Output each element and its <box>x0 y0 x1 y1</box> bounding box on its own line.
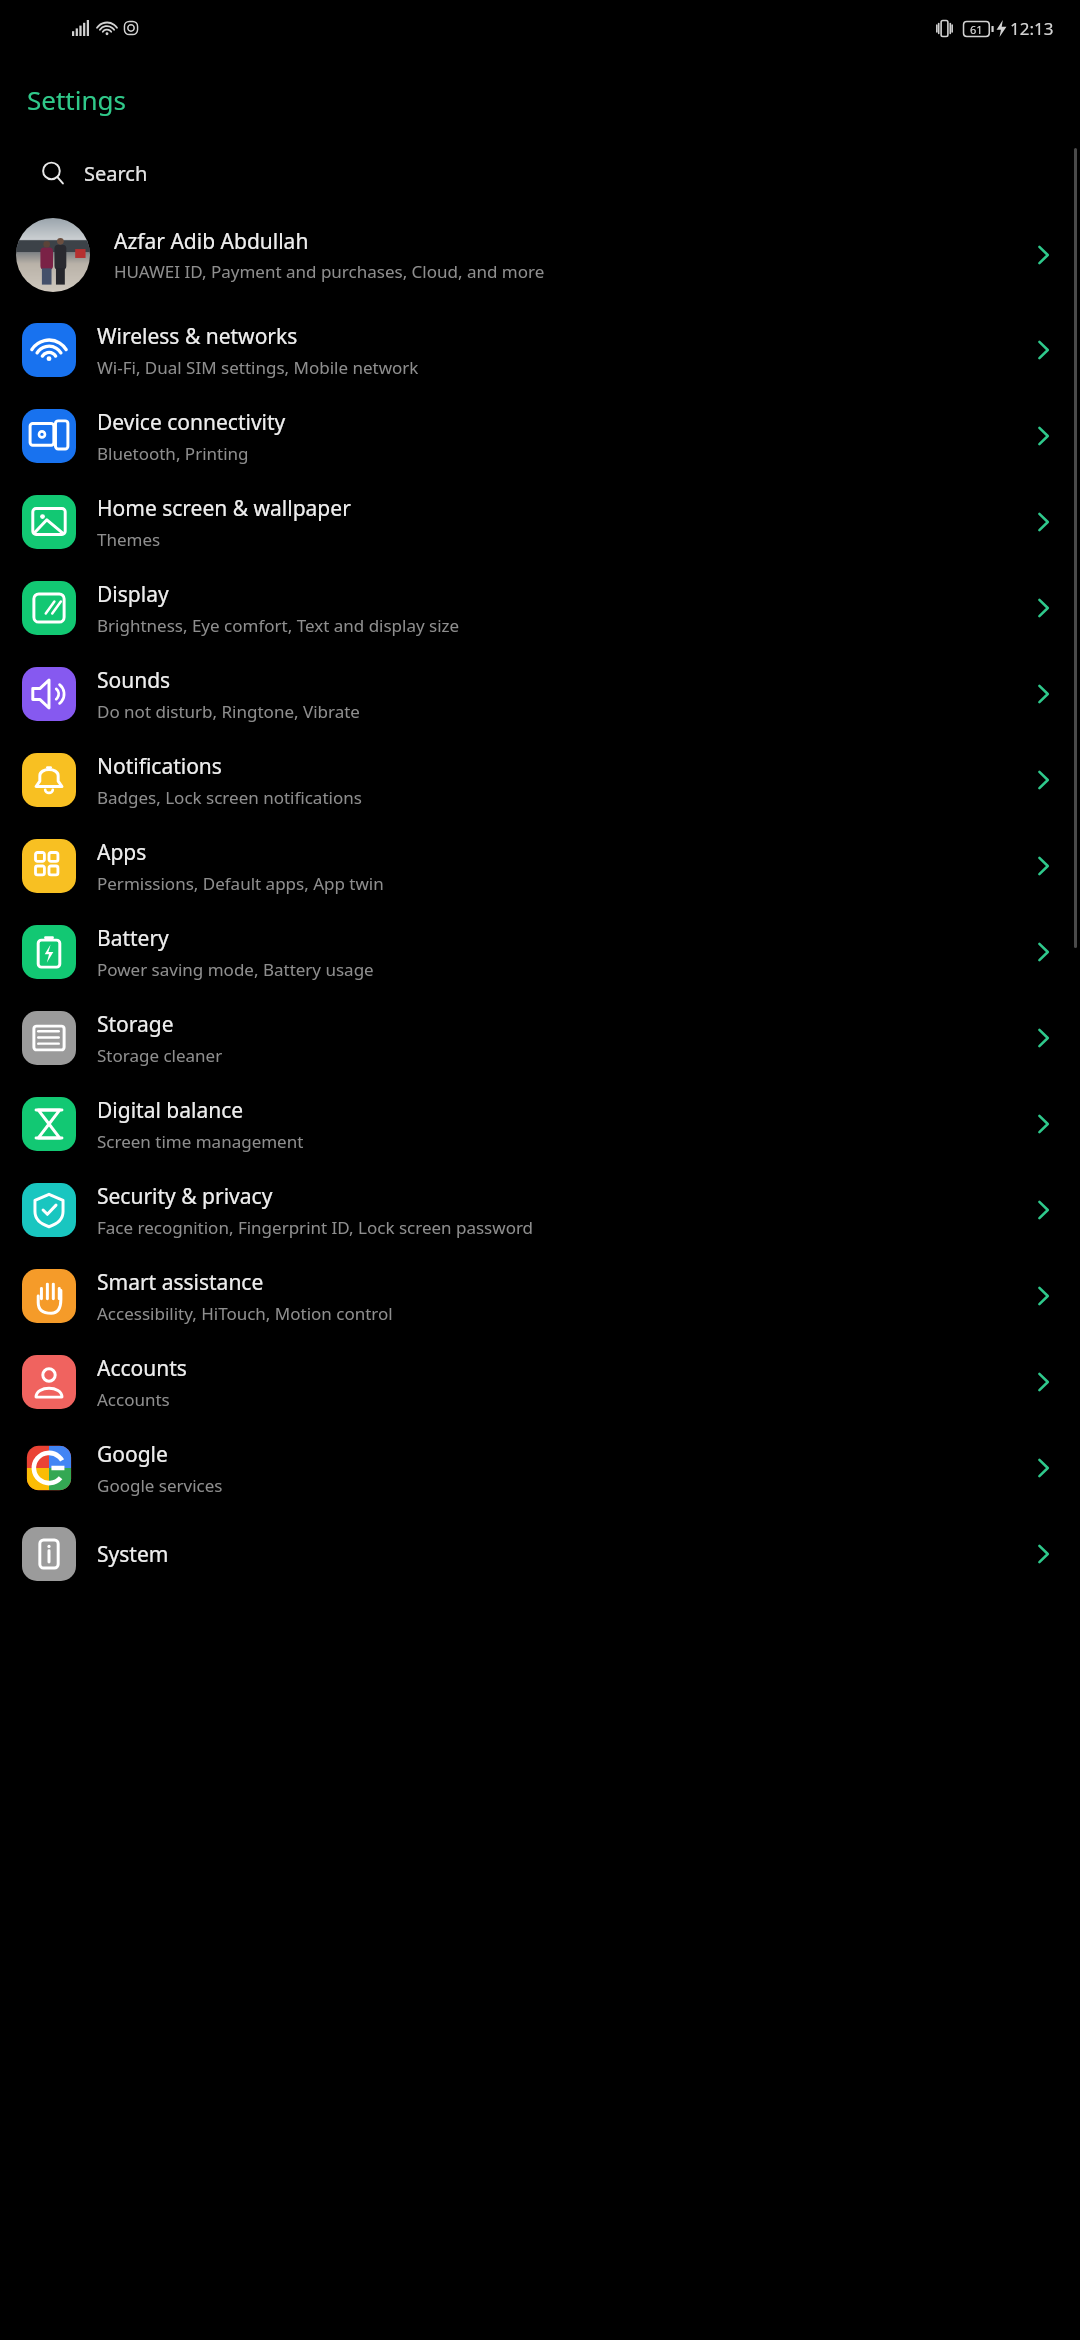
button[interactable]: Device connectivity <box>0 393 1080 479</box>
staticText: 12:13 <box>1010 17 1054 40</box>
staticText: Notifications <box>97 752 222 781</box>
staticText: Accounts <box>97 1388 170 1411</box>
staticText: System <box>97 1540 169 1569</box>
other: Open <box>1028 1023 1058 1053</box>
button[interactable]: Wireless & networks <box>0 307 1080 393</box>
button[interactable]: Notifications <box>0 737 1080 823</box>
staticText: Digital balance <box>97 1096 244 1125</box>
staticText: Apps <box>97 838 147 867</box>
staticText: Power saving mode, Battery usage <box>97 958 374 981</box>
button[interactable]: Apps <box>0 823 1080 909</box>
staticText: Accessibility, HiTouch, Motion control <box>97 1302 393 1325</box>
other: Open <box>1028 937 1058 967</box>
staticText: Storage cleaner <box>97 1044 223 1067</box>
staticText: Google services <box>97 1474 223 1497</box>
staticText: 61 <box>970 22 983 37</box>
staticText: Wireless & networks <box>97 322 298 351</box>
button[interactable]: Google <box>0 1425 1080 1511</box>
staticText: Azfar Adib Abdullah <box>114 227 309 256</box>
button[interactable]: Display <box>0 565 1080 651</box>
other: Open <box>1028 507 1058 537</box>
staticText: Accounts <box>97 1354 187 1383</box>
staticText: Sounds <box>97 666 171 695</box>
staticText: Search <box>84 160 148 187</box>
other: Open <box>1028 1195 1058 1225</box>
other: Open <box>1028 421 1058 451</box>
other: Open <box>1028 335 1058 365</box>
staticText: Wi-Fi, Dual SIM settings, Mobile network <box>97 356 419 379</box>
button[interactable]: Search <box>0 147 1080 199</box>
other: Open <box>1028 851 1058 881</box>
staticText: Display <box>97 580 169 609</box>
staticText: Face recognition, Fingerprint ID, Lock s… <box>97 1216 534 1239</box>
staticText: Screen time management <box>97 1130 304 1153</box>
button[interactable]: Home screen & wallpaper <box>0 479 1080 565</box>
other: Open <box>1028 679 1058 709</box>
button[interactable]: Battery <box>0 909 1080 995</box>
button[interactable]: Storage <box>0 995 1080 1081</box>
other: Open <box>1028 1281 1058 1311</box>
button[interactable]: Sounds <box>0 651 1080 737</box>
other: Open <box>1028 1453 1058 1483</box>
staticText: Brightness, Eye comfort, Text and displa… <box>97 614 460 637</box>
staticText: Badges, Lock screen notifications <box>97 786 362 809</box>
button[interactable]: Smart assistance <box>0 1253 1080 1339</box>
staticText: Google <box>97 1440 168 1469</box>
staticText: Home screen & wallpaper <box>97 494 351 523</box>
other: Open <box>1028 593 1058 623</box>
other: Open <box>1028 240 1058 270</box>
staticText: Permissions, Default apps, App twin <box>97 872 384 895</box>
other: Open <box>1028 1539 1058 1569</box>
button[interactable]: Security & privacy <box>0 1167 1080 1253</box>
staticText: Bluetooth, Printing <box>97 442 249 465</box>
staticText: Settings <box>27 82 126 117</box>
staticText: Storage <box>97 1010 174 1039</box>
other: Open <box>1028 765 1058 795</box>
other: Open <box>1028 1109 1058 1139</box>
button[interactable]: Accounts <box>0 1339 1080 1425</box>
button[interactable]: System <box>0 1511 1080 1597</box>
staticText: Security & privacy <box>97 1182 273 1211</box>
staticText: Do not disturb, Ringtone, Vibrate <box>97 700 360 723</box>
staticText: Battery <box>97 924 169 953</box>
staticText: Device connectivity <box>97 408 286 437</box>
button[interactable]: Digital balance <box>0 1081 1080 1167</box>
other: Open <box>1028 1367 1058 1397</box>
staticText: Themes <box>97 528 161 551</box>
button[interactable]: Azfar Adib Abdullah <box>0 213 1080 297</box>
staticText: HUAWEI ID, Payment and purchases, Cloud,… <box>114 260 545 283</box>
staticText: Smart assistance <box>97 1268 264 1297</box>
